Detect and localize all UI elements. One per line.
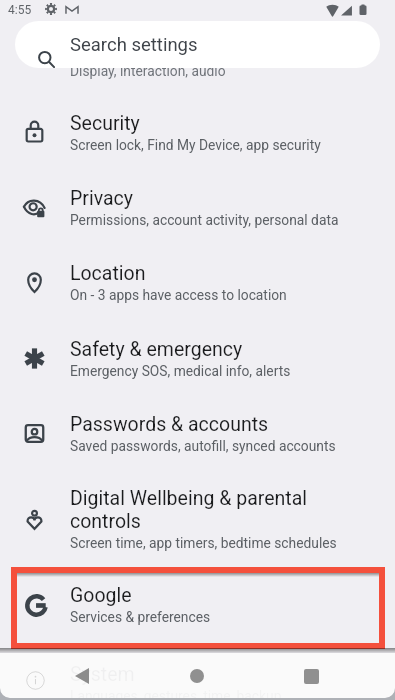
button[interactable]: Passwords & accounts — [0, 413, 395, 454]
staticText: Emergency SOS, medical info, alerts — [70, 363, 390, 379]
staticText: Saved passwords, autofill, synced accoun… — [70, 438, 390, 454]
button[interactable]: Back — [53, 656, 111, 696]
button[interactable]: Digital Wellbeing & parental controls — [0, 487, 395, 551]
staticText: Display, interaction, audio — [70, 63, 226, 79]
staticText: Privacy — [70, 187, 390, 210]
staticText: Location — [70, 262, 390, 285]
staticText: Search settings — [70, 34, 198, 56]
button[interactable]: Privacy — [0, 187, 395, 228]
button[interactable]: Accessibility — [16, 661, 54, 698]
staticText: Permissions, account activity, personal … — [70, 212, 390, 228]
staticText: Languages, gestures, time, backup — [70, 688, 282, 700]
staticText: Passwords & accounts — [70, 413, 390, 436]
button[interactable]: Google — [11, 567, 385, 649]
staticText: On - 3 apps have access to location — [70, 287, 390, 303]
button[interactable]: System — [0, 663, 395, 700]
staticText: Google — [70, 584, 132, 607]
staticText: Safety & emergency — [70, 338, 390, 361]
button[interactable]: Location — [0, 262, 395, 303]
staticText: 4:55 — [8, 3, 32, 17]
staticText: Security — [70, 112, 390, 135]
staticText: Digital Wellbeing & parental controls — [70, 487, 320, 533]
button[interactable]: Search settings — [15, 21, 380, 68]
button[interactable]: Recent apps — [282, 656, 340, 696]
button[interactable]: Safety & emergency — [0, 338, 395, 379]
button[interactable]: Home — [168, 656, 226, 696]
staticText: Screen time, app timers, bedtime schedul… — [70, 535, 390, 551]
staticText: System — [70, 663, 135, 686]
staticText: Screen lock, Find My Device, app securit… — [70, 137, 390, 153]
staticText: Services & preferences — [70, 609, 211, 625]
button[interactable]: Security — [0, 112, 395, 153]
